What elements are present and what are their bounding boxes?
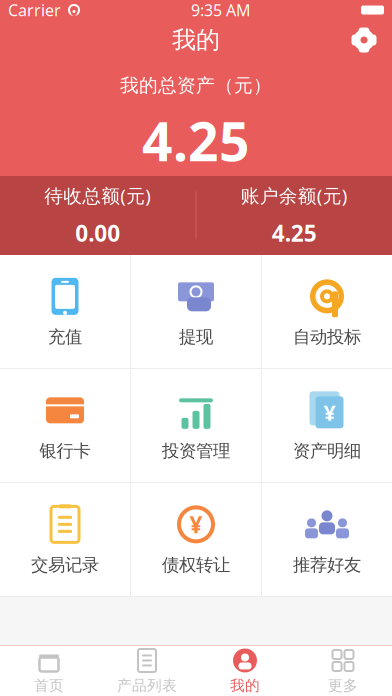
staticText: 银行卡 (39, 440, 90, 462)
button[interactable]: 待收总额(元) (0, 166, 195, 265)
button[interactable]: 我的 (196, 646, 294, 696)
staticText: 资产明细 (293, 440, 361, 462)
staticText: 0.00 (75, 218, 120, 248)
button[interactable]: 提现 (131, 255, 261, 368)
button[interactable]: 推荐好友 (262, 483, 392, 596)
staticText: 我的 (172, 25, 220, 55)
button[interactable]: 自动投标 (262, 255, 392, 368)
button[interactable]: ¥ (262, 369, 392, 482)
button[interactable]: 投资管理 (131, 369, 261, 482)
staticText: 我的 (230, 676, 260, 694)
staticText: 4.25 (272, 218, 317, 248)
button[interactable]: 交易记录 (0, 483, 130, 596)
staticText: 提现 (179, 326, 213, 348)
staticText: 充值 (48, 326, 82, 348)
staticText: 待收总额(元) (44, 183, 151, 208)
staticText: 债权转让 (162, 554, 230, 576)
staticText: 交易记录 (31, 554, 99, 576)
button[interactable]: 产品列表 (98, 646, 196, 696)
staticText: 4.25 (142, 105, 250, 176)
button[interactable]: 银行卡 (0, 369, 130, 482)
staticText: 9:35 AM (191, 0, 251, 21)
button[interactable]: 充值 (0, 255, 130, 368)
staticText: 首页 (34, 676, 64, 694)
staticText: ¥ (189, 509, 202, 539)
staticText: 更多 (328, 676, 358, 694)
button[interactable]: 账户余额(元) (196, 166, 392, 265)
button[interactable]: 更多 (294, 646, 392, 696)
button[interactable]: ¥ (131, 483, 261, 596)
staticText: Carrier (8, 0, 61, 21)
staticText: 我的总资产（元） (120, 74, 272, 97)
staticText: 投资管理 (162, 440, 230, 462)
button[interactable]: Settings (342, 21, 386, 59)
staticText: 自动投标 (293, 326, 361, 348)
button[interactable]: 首页 (0, 646, 98, 696)
staticText: 推荐好友 (293, 554, 361, 576)
staticText: 产品列表 (117, 676, 177, 694)
staticText: 账户余额(元) (241, 183, 348, 208)
staticText: ¥ (323, 398, 335, 426)
